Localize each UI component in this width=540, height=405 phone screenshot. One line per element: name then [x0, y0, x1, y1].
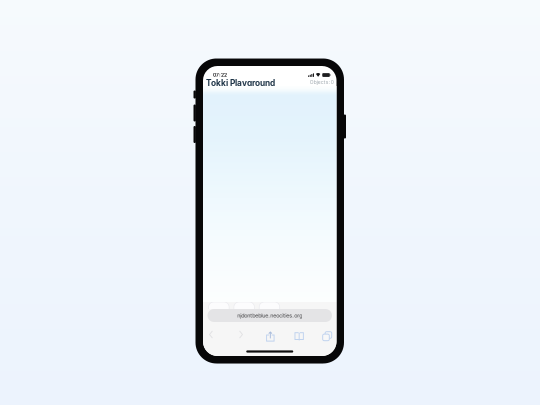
button[interactable]: Bookmarks — [289, 323, 307, 345]
button[interactable]: Tabs — [317, 323, 335, 345]
button[interactable]: njdontbeblue.neocities.org — [207, 309, 332, 322]
button[interactable]: Back — [203, 323, 219, 345]
staticText: 07:22 — [213, 72, 227, 78]
button[interactable]: Share — [260, 323, 278, 345]
staticText: Objects: 0 — [310, 79, 334, 85]
staticText: njdontbeblue.neocities.org — [237, 312, 302, 319]
staticText: Tokki Playground — [206, 78, 275, 88]
